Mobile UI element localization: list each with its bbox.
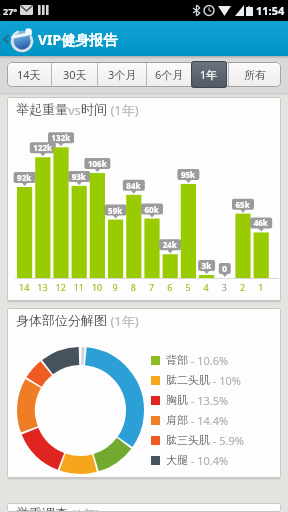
staticText: 大腿	[166, 453, 188, 467]
staticText: - 10.4%	[188, 453, 229, 468]
staticText: - 5.9%	[210, 433, 244, 448]
staticText: 14天	[17, 67, 41, 82]
button[interactable]: 30天	[52, 62, 97, 87]
button[interactable]	[193, 62, 228, 87]
staticText: 3个月	[108, 67, 137, 82]
staticText: 胸肌	[166, 393, 188, 407]
staticText: - 10.6%	[188, 353, 229, 368]
staticText: 27°	[3, 5, 18, 17]
staticText: - 10%	[210, 373, 241, 388]
staticText: (1年)	[68, 505, 100, 512]
button[interactable]: 胸肌	[151, 390, 229, 410]
staticText: 身体部位分解图	[16, 312, 107, 328]
staticText: - 13.5%	[188, 393, 229, 408]
staticText: vs	[68, 101, 81, 119]
staticText: 肩部	[166, 413, 188, 427]
staticText: 30天	[63, 67, 87, 82]
button[interactable]: 所有	[229, 62, 281, 87]
button[interactable]: 肱三头肌	[151, 430, 244, 450]
button[interactable]: 肱二头肌	[151, 370, 241, 390]
staticText: VIP健身报告	[38, 30, 118, 49]
button[interactable]: 肩部	[151, 410, 229, 430]
staticText: - 14.4%	[188, 413, 229, 428]
button[interactable]: 背部	[151, 350, 229, 370]
staticText: (1年)	[107, 312, 139, 330]
button[interactable]: 大腿	[151, 450, 229, 470]
staticText: 肱三头肌	[166, 433, 210, 447]
button[interactable]: 6个月	[147, 62, 192, 87]
button[interactable]: 3个月	[98, 62, 146, 87]
staticText: 1年	[200, 67, 218, 82]
staticText: 11:54	[256, 3, 285, 18]
staticText: 举起重量	[16, 101, 68, 117]
button[interactable]: 1年	[191, 61, 227, 88]
button[interactable]: 14天	[7, 62, 51, 87]
staticText: 时间	[81, 101, 107, 117]
staticText: 6个月	[155, 67, 184, 82]
staticText: 所有	[244, 68, 266, 82]
staticText: 肱二头肌	[166, 373, 210, 387]
staticText: 背部	[166, 353, 188, 367]
staticText: (1年)	[107, 101, 139, 119]
staticText: 举重调查	[16, 505, 68, 512]
